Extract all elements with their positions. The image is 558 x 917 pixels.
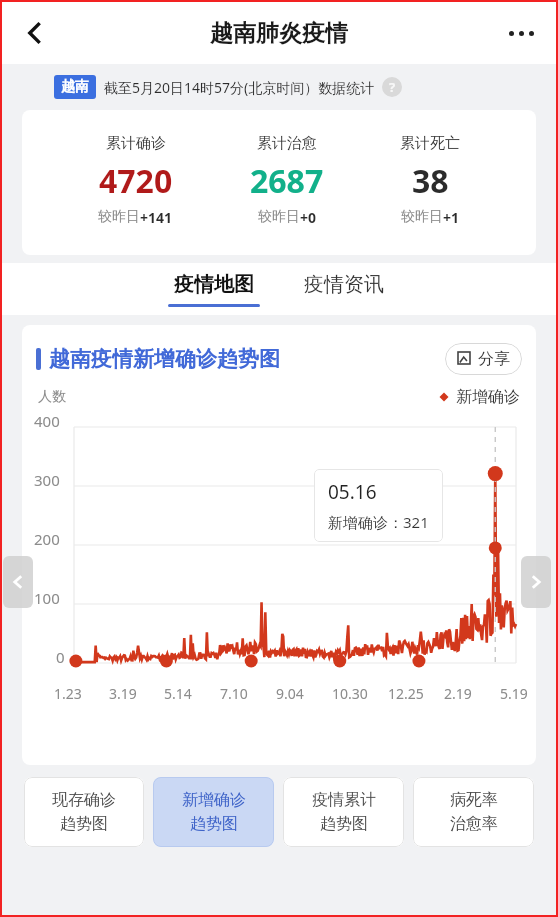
button[interactable]: 疫情累计 — [283, 777, 404, 847]
button[interactable]: Back — [10, 8, 60, 58]
staticText: 累计死亡 — [400, 134, 460, 153]
staticText: 人数 — [38, 388, 66, 406]
staticText: +141 — [140, 208, 173, 227]
staticText: 9.04 — [276, 684, 332, 703]
staticText: 4720 — [99, 159, 173, 203]
staticText: 分享 — [478, 349, 510, 369]
staticText: 新增确诊 — [456, 387, 520, 407]
button[interactable]: 现存确诊 — [24, 777, 144, 847]
staticText: 趋势图 — [190, 814, 238, 834]
staticText: 越南 — [61, 78, 89, 96]
staticText: 0 — [56, 647, 65, 667]
staticText: 400 — [34, 411, 60, 431]
button[interactable]: More options — [496, 8, 546, 58]
staticText: 2.19 — [444, 684, 500, 703]
staticText: 10.30 — [332, 684, 388, 703]
staticText: 现存确诊 — [52, 790, 116, 810]
staticText: +0 — [300, 208, 317, 227]
button[interactable]: 疫情地图 — [162, 272, 266, 307]
staticText: 1.23 — [54, 684, 109, 703]
staticText: 05.16 — [328, 479, 377, 505]
staticText: 3.19 — [109, 684, 164, 703]
staticText: 截至5月20日14时57分(北京时间）数据统计 — [104, 78, 375, 97]
staticText: 100 — [34, 588, 60, 608]
staticText: 38 — [412, 159, 449, 203]
staticText: 病死率 — [450, 790, 498, 810]
staticText: 较昨日 — [98, 208, 140, 226]
staticText: 治愈率 — [450, 814, 498, 834]
button[interactable]: Next — [521, 556, 551, 608]
staticText: 趋势图 — [320, 814, 368, 834]
staticText: 2687 — [250, 159, 324, 203]
staticText: 疫情地图 — [174, 272, 254, 297]
staticText: 新增确诊 — [182, 790, 246, 810]
staticText: 越南疫情新增确诊趋势图 — [49, 346, 280, 372]
staticText: 疫情资讯 — [304, 272, 384, 297]
staticText: 7.10 — [220, 684, 276, 703]
staticText: 较昨日 — [258, 208, 300, 226]
staticText: 12.25 — [388, 684, 444, 703]
staticText: +1 — [443, 208, 460, 227]
button[interactable]: 分享 — [445, 343, 522, 375]
button[interactable]: 疫情资讯 — [292, 272, 396, 307]
staticText: 越南肺炎疫情 — [210, 19, 348, 48]
button[interactable]: 新增确诊 — [153, 777, 274, 847]
staticText: 趋势图 — [60, 814, 108, 834]
staticText: 300 — [34, 470, 60, 490]
staticText: 较昨日 — [401, 208, 443, 226]
staticText: 5.14 — [164, 684, 220, 703]
staticText: ? — [389, 78, 396, 96]
staticText: 5.19 — [500, 684, 528, 703]
staticText: 累计确诊 — [106, 134, 166, 153]
staticText: 累计治愈 — [257, 134, 317, 153]
button[interactable]: 病死率 — [413, 777, 534, 847]
staticText: 新增确诊：321 — [328, 512, 429, 532]
staticText: 200 — [34, 529, 60, 549]
button[interactable]: Previous — [3, 556, 33, 608]
staticText: 疫情累计 — [312, 790, 376, 810]
button[interactable]: Help — [382, 77, 402, 97]
